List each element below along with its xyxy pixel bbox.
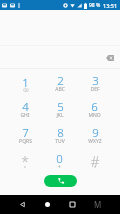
staticText: 6 [91, 99, 98, 115]
staticText: DEF [90, 86, 100, 93]
staticText: JKL [56, 112, 64, 119]
button[interactable]: Call [44, 175, 77, 187]
staticText: 2 [57, 73, 64, 89]
staticText: 98 % [89, 2, 101, 9]
staticText: GHI [20, 112, 30, 119]
button[interactable]: Home [38, 195, 57, 214]
staticText: # [90, 152, 100, 171]
button[interactable]: 5 [42, 97, 77, 123]
button[interactable]: Back [13, 195, 32, 214]
button[interactable]: 9 [77, 123, 112, 149]
staticText: 1 [22, 75, 29, 91]
button[interactable]: 3 [77, 72, 112, 97]
staticText: 13:51 [103, 2, 118, 9]
staticText: MNO [88, 112, 101, 119]
staticText: PQRS [19, 138, 32, 145]
button[interactable]: 0 [42, 149, 77, 175]
button[interactable]: Menu [88, 195, 107, 214]
staticText: 9 [92, 125, 99, 141]
staticText: * [21, 152, 29, 171]
button[interactable]: # [77, 149, 112, 175]
staticText: 7 [22, 125, 29, 141]
button[interactable]: 2 [42, 72, 77, 97]
staticText: 3 [92, 73, 99, 89]
button[interactable]: 8 [42, 123, 77, 149]
button[interactable]: 1 [8, 72, 42, 97]
button[interactable]: 7 [8, 123, 42, 149]
staticText: WXYZ [88, 138, 102, 145]
staticText: + [58, 164, 61, 171]
button[interactable]: Recent apps [63, 195, 82, 214]
staticText: TUV [55, 138, 65, 145]
button[interactable]: * [8, 149, 42, 175]
staticText: 0 [56, 151, 63, 167]
button[interactable]: Backspace [103, 51, 116, 64]
staticText: M [94, 199, 102, 210]
button[interactable]: 6 [77, 97, 112, 123]
button[interactable]: 4 [8, 97, 42, 123]
staticText: ABC [55, 86, 65, 93]
staticText: 5 [57, 99, 64, 115]
staticText: 4 [22, 99, 29, 115]
staticText: 8 [57, 125, 64, 141]
